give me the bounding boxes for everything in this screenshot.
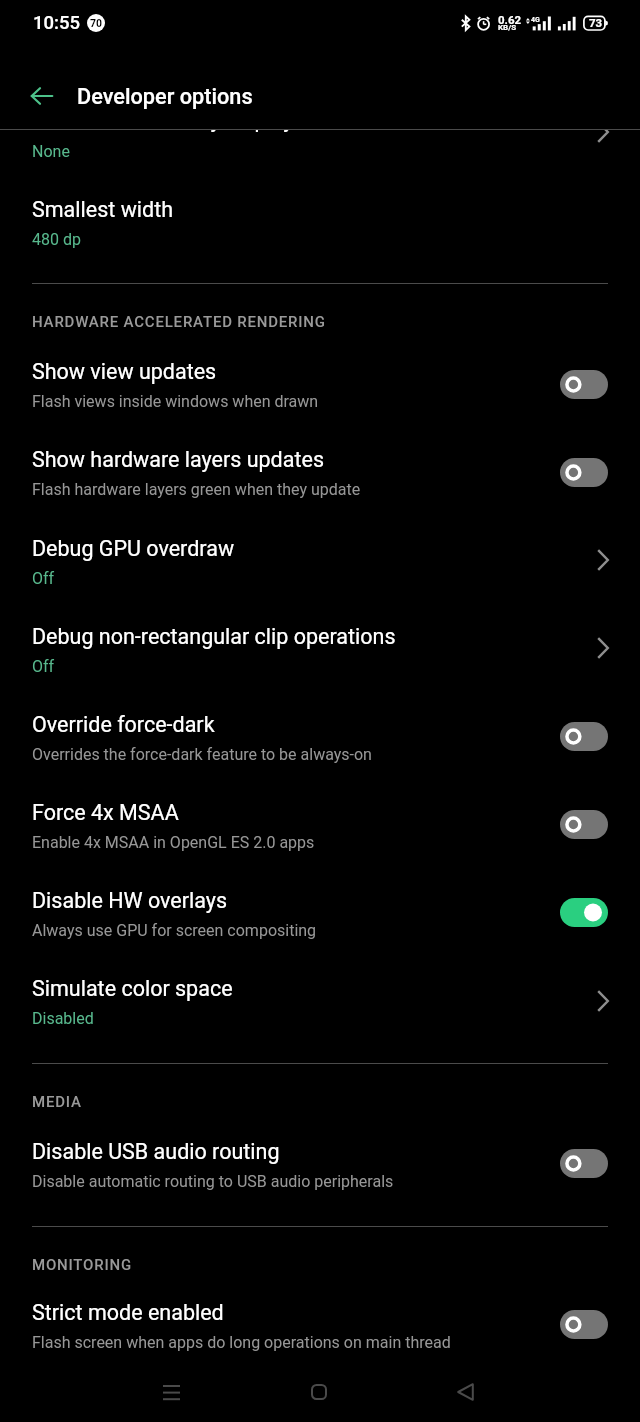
button[interactable]: Show hardware layers updates [0, 429, 640, 517]
button[interactable]: Open [581, 626, 625, 670]
staticText: Disabled [32, 1009, 94, 1028]
button[interactable]: Override force-dark [0, 694, 640, 782]
button[interactable]: Switch off [560, 810, 608, 839]
staticText: 73 [589, 16, 603, 29]
button[interactable]: Force 4x MSAA [0, 782, 640, 870]
button[interactable]: Open [581, 538, 625, 582]
staticText: Developer options [77, 84, 253, 109]
staticText: 0.62 [498, 13, 522, 26]
button[interactable]: Switch off [560, 370, 608, 399]
button[interactable]: Disable HW overlays [0, 870, 640, 958]
staticText: Smallest width [32, 197, 174, 222]
staticText: 4G [531, 16, 540, 24]
staticText: Flash hardware layers green when they up… [32, 480, 361, 499]
staticText: 70 [90, 17, 103, 29]
staticText: Simulate color space [32, 976, 233, 1001]
button[interactable]: Show view updates [0, 341, 640, 429]
button[interactable]: Smallest width [0, 179, 640, 267]
button[interactable]: Navigate up [18, 73, 64, 119]
staticText: Debug GPU overdraw [32, 536, 235, 561]
staticText: MONITORING [32, 1256, 132, 1274]
button[interactable]: Switch on [560, 898, 608, 927]
button[interactable]: Switch off [560, 1149, 608, 1178]
staticText: None [32, 142, 70, 161]
button[interactable]: Disable USB audio routing [0, 1121, 640, 1209]
staticText: Flash views inside windows when drawn [32, 392, 319, 411]
staticText: Disable HW overlays [32, 888, 228, 913]
staticText: Force 4x MSAA [32, 800, 179, 825]
staticText: Always use GPU for screen compositing [32, 921, 317, 940]
staticText: Debug non-rectangular clip operations [32, 624, 396, 649]
button[interactable]: Recent apps [147, 1368, 195, 1416]
staticText: Show hardware layers updates [32, 447, 324, 472]
staticText: 10:55 [33, 12, 80, 34]
staticText: KB/S [498, 23, 517, 32]
button[interactable]: Switch off [560, 1310, 608, 1339]
staticText: Show view updates [32, 359, 217, 384]
staticText: Override force-dark [32, 712, 215, 737]
staticText: Off [32, 657, 55, 676]
staticText: MEDIA [32, 1093, 82, 1111]
staticText: Simulate secondary displays [32, 107, 305, 132]
staticText: Off [32, 569, 55, 588]
button[interactable]: Switch off [560, 458, 608, 487]
button[interactable]: Strict mode enabled [0, 1282, 640, 1370]
staticText: 480 dp [32, 230, 81, 249]
staticText: Enable 4x MSAA in OpenGL ES 2.0 apps [32, 833, 315, 852]
staticText: Overrides the force-dark feature to be a… [32, 745, 372, 764]
button[interactable]: Debug non-rectangular clip operations [0, 606, 640, 694]
button[interactable]: Simulate color space [0, 958, 640, 1046]
button[interactable]: Simulate secondary displays [0, 90, 640, 194]
staticText: Disable USB audio routing [32, 1139, 280, 1164]
staticText: Flash screen when apps do long operation… [32, 1333, 451, 1352]
button[interactable]: Home [295, 1368, 343, 1416]
staticText: HARDWARE ACCELERATED RENDERING [32, 313, 326, 331]
staticText: Strict mode enabled [32, 1300, 224, 1325]
button[interactable]: Open [581, 979, 625, 1023]
button[interactable]: Open [581, 110, 625, 154]
button[interactable]: Debug GPU overdraw [0, 518, 640, 606]
staticText: Disable automatic routing to USB audio p… [32, 1172, 394, 1191]
button[interactable]: Back [441, 1368, 489, 1416]
button[interactable]: Switch off [560, 722, 608, 751]
